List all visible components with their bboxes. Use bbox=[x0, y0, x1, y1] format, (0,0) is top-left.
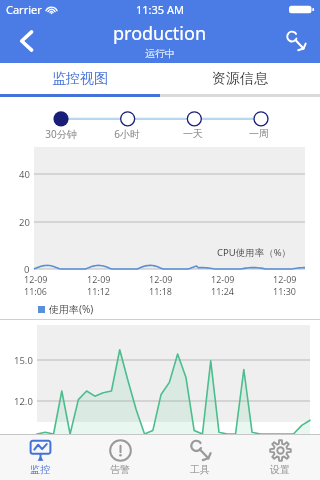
button[interactable]: 告警 bbox=[80, 435, 160, 480]
staticText: 15.0 bbox=[14, 354, 33, 367]
staticText: 11:30 bbox=[273, 285, 297, 297]
button[interactable]: 一天 bbox=[160, 127, 226, 140]
staticText: 使用率(%) bbox=[49, 302, 94, 316]
staticText: 监控 bbox=[30, 463, 50, 476]
button[interactable]: 资源信息 bbox=[160, 63, 320, 94]
staticText: 12-09 bbox=[149, 273, 173, 285]
button[interactable]: 一周 bbox=[226, 127, 292, 140]
staticText: 12-09 bbox=[24, 273, 48, 285]
staticText: 一周 bbox=[249, 127, 269, 140]
staticText: 12-09 bbox=[87, 273, 111, 285]
staticText: 监控视图 bbox=[52, 70, 108, 88]
staticText: 12.0 bbox=[14, 395, 33, 408]
button[interactable]: 工具 bbox=[160, 435, 240, 480]
staticText: 12-09 bbox=[211, 273, 235, 285]
staticText: Carrier bbox=[6, 2, 42, 17]
staticText: 告警 bbox=[110, 463, 130, 476]
staticText: 11:35 AM bbox=[136, 2, 184, 17]
staticText: 12-09 bbox=[273, 273, 297, 285]
button[interactable]: 设置 bbox=[240, 435, 320, 480]
staticText: production bbox=[113, 21, 207, 46]
staticText: 11:12 bbox=[87, 285, 111, 297]
staticText: 资源信息 bbox=[212, 70, 268, 88]
button[interactable]: 监控视图 bbox=[0, 63, 160, 94]
staticText: 0 bbox=[24, 263, 30, 276]
staticText: 一天 bbox=[183, 127, 203, 140]
staticText: 6小时 bbox=[114, 127, 140, 141]
staticText: 40 bbox=[19, 168, 30, 181]
staticText: 30分钟 bbox=[45, 127, 77, 141]
staticText: 工具 bbox=[190, 463, 210, 476]
staticText: CPU使用率（%） bbox=[217, 246, 292, 259]
staticText: 11:18 bbox=[149, 285, 173, 297]
staticText: 20 bbox=[19, 216, 30, 229]
staticText: 11:24 bbox=[211, 285, 235, 297]
staticText: 设置 bbox=[270, 463, 290, 476]
staticText: 11:06 bbox=[24, 285, 48, 297]
button[interactable]: 30分钟 bbox=[28, 127, 94, 141]
button[interactable]: 6小时 bbox=[94, 127, 160, 141]
button[interactable]: Tools bbox=[272, 18, 320, 63]
button[interactable]: 监控 bbox=[0, 435, 80, 480]
button[interactable]: Back bbox=[0, 18, 52, 63]
staticText: 运行中 bbox=[145, 47, 175, 60]
